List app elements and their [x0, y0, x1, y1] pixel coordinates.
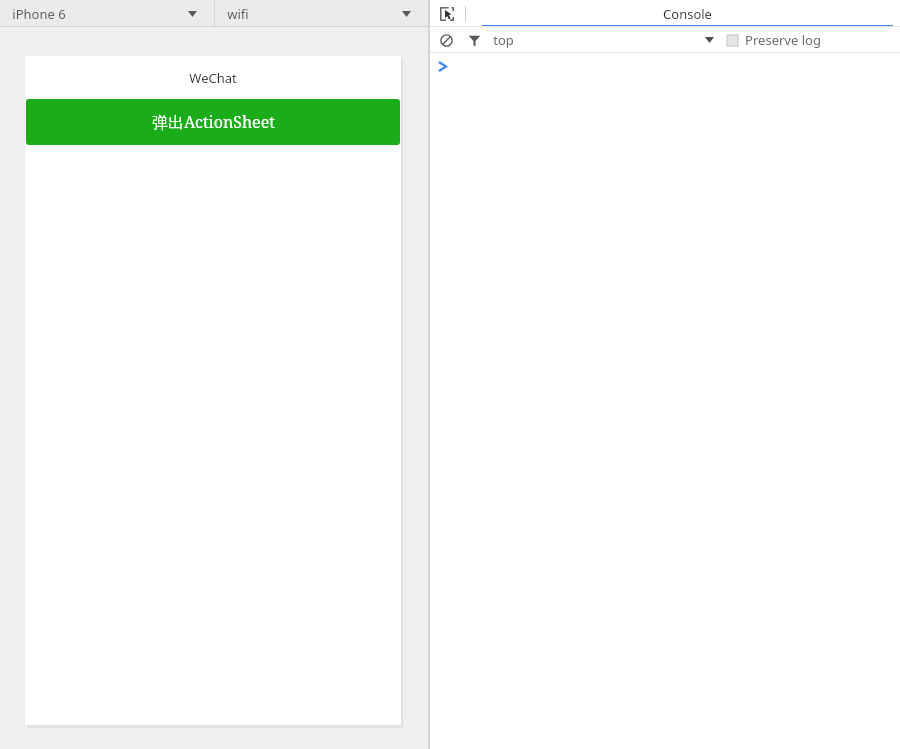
staticText: Console: [663, 5, 712, 23]
button[interactable]: Select network: [215, 0, 428, 27]
button[interactable]: Select device: [0, 0, 214, 27]
button[interactable]: 弹出ActionSheet: [26, 99, 400, 145]
button[interactable]: Filter: [464, 30, 484, 50]
staticText: WeChat: [189, 69, 237, 87]
button[interactable]: Console: [475, 0, 900, 27]
button[interactable]: Inspect element: [435, 2, 459, 26]
staticText: wifi: [227, 5, 249, 23]
button[interactable]: Clear console: [436, 30, 456, 50]
staticText: 弹出ActionSheet: [152, 111, 275, 133]
button[interactable]: Context selector: [700, 31, 718, 49]
button[interactable]: top: [493, 27, 514, 53]
staticText: Preserve log: [745, 31, 821, 49]
staticText: top: [493, 31, 514, 49]
staticText: iPhone 6: [12, 5, 66, 23]
button[interactable]: Preserve log: [727, 27, 821, 53]
